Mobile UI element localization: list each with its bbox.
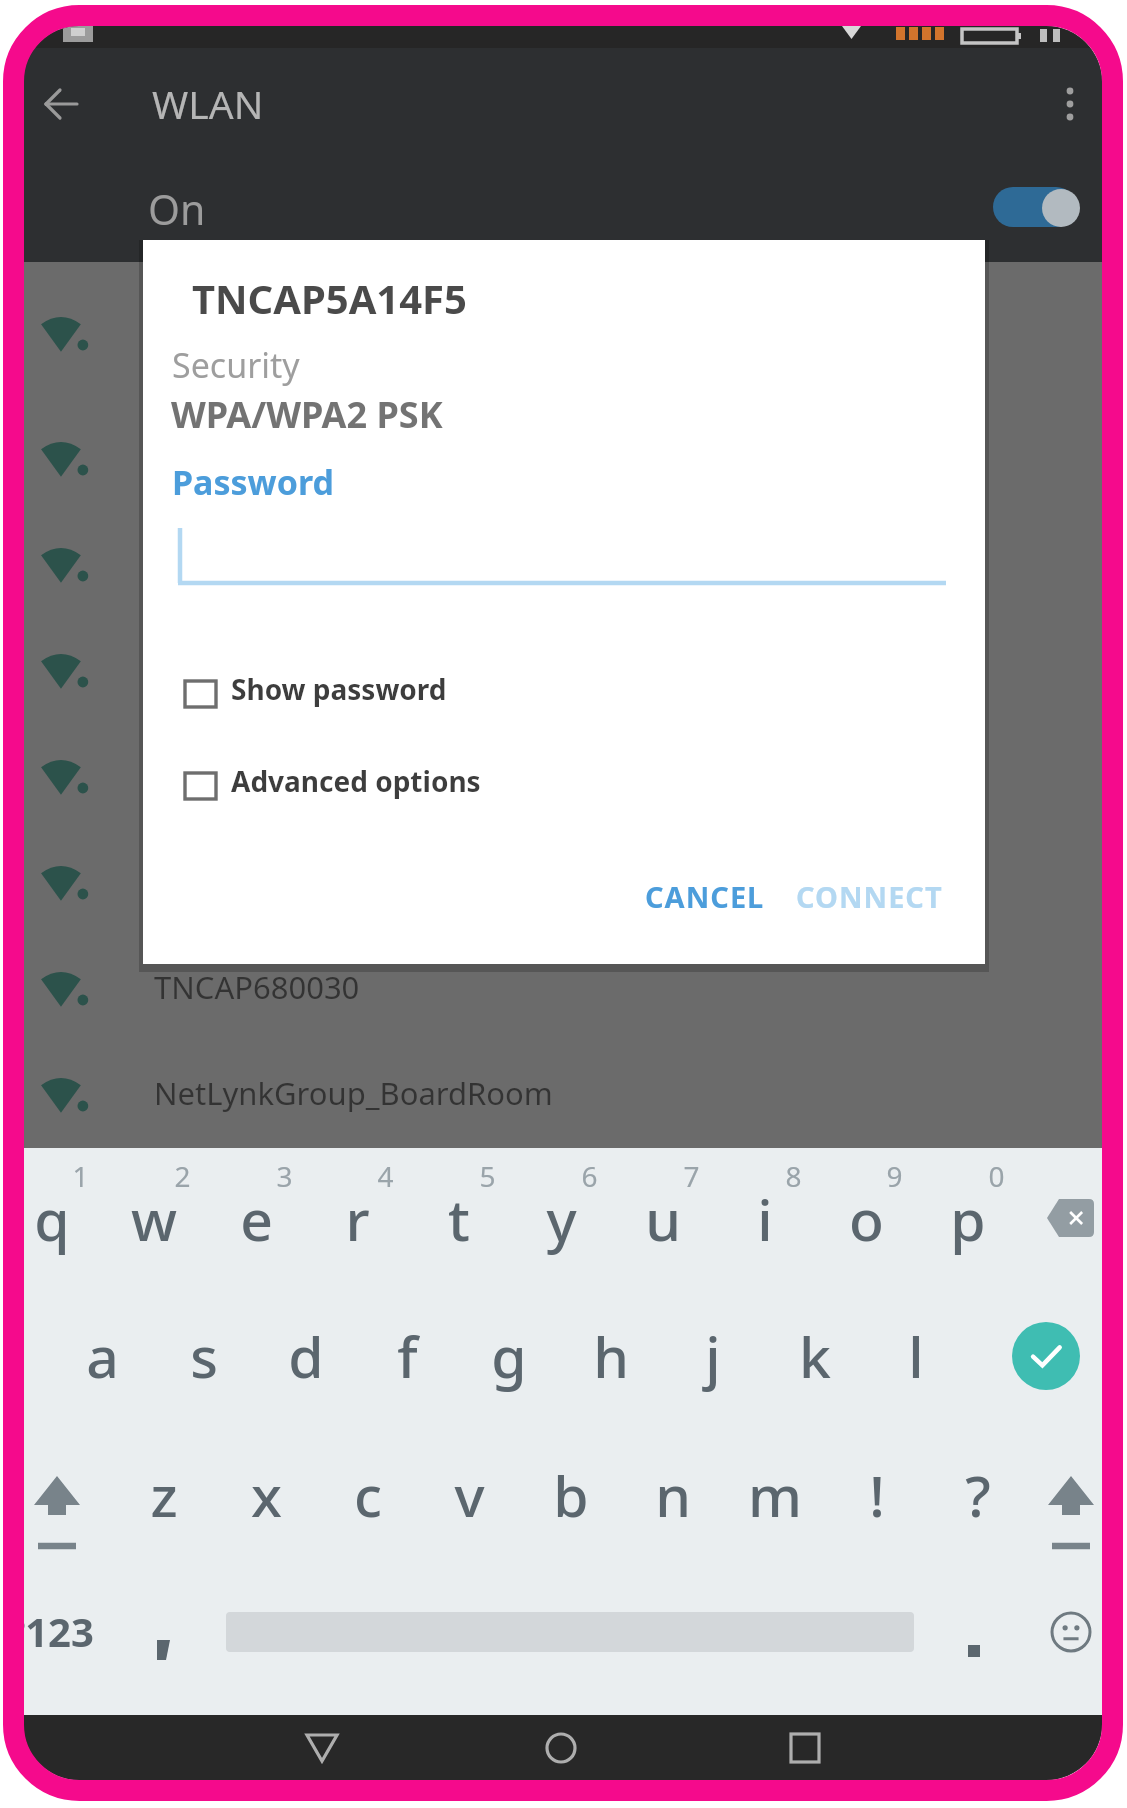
- staticText: Advanced options: [231, 762, 481, 800]
- staticText: On: [148, 181, 206, 237]
- button[interactable]: b: [520, 1453, 622, 1537]
- button[interactable]: h: [560, 1314, 662, 1398]
- button[interactable]: m: [724, 1453, 826, 1537]
- staticText: x: [251, 1456, 282, 1534]
- button[interactable]: Back: [274, 1715, 370, 1780]
- staticText: j: [705, 1317, 721, 1395]
- staticText: Password: [172, 459, 334, 505]
- staticText: f: [397, 1317, 418, 1395]
- button[interactable]: Enter: [1012, 1322, 1080, 1390]
- staticText: 8: [785, 1157, 802, 1195]
- staticText: 7: [683, 1157, 700, 1195]
- staticText: !: [869, 1456, 885, 1534]
- button[interactable]: k: [764, 1314, 866, 1398]
- button[interactable]: p: [917, 1177, 1019, 1261]
- staticText: v: [454, 1456, 485, 1534]
- button[interactable]: [23, 281, 1102, 387]
- staticText: l: [908, 1317, 924, 1395]
- staticText: NetLynkGroup_BoardRoom: [154, 1072, 553, 1114]
- button[interactable]: Advanced options: [183, 757, 481, 815]
- button[interactable]: Back: [23, 60, 105, 148]
- button[interactable]: Period: [934, 1611, 1014, 1691]
- button[interactable]: f: [356, 1314, 458, 1398]
- staticText: TNCAP5A14F5: [192, 271, 467, 325]
- staticText: n: [655, 1456, 691, 1534]
- staticText: TNCAP680030: [154, 966, 360, 1008]
- button[interactable]: [23, 724, 1102, 830]
- button[interactable]: Recents: [757, 1715, 853, 1780]
- staticText: i: [757, 1180, 773, 1258]
- button[interactable]: Show password: [183, 665, 447, 723]
- staticText: m: [748, 1456, 802, 1534]
- staticText: WPA/WPA2 PSK: [171, 390, 443, 439]
- staticText: ?: [965, 1456, 991, 1534]
- button[interactable]: g: [458, 1314, 560, 1398]
- staticText: 0: [988, 1157, 1005, 1195]
- staticText: g: [491, 1317, 527, 1395]
- button[interactable]: [23, 618, 1102, 724]
- button[interactable]: NetLynkGroup_BoardRoom: [23, 1042, 1102, 1148]
- button[interactable]: [23, 512, 1102, 618]
- button[interactable]: r: [306, 1177, 408, 1261]
- staticText: 5: [479, 1157, 496, 1195]
- button[interactable]: Shift: [23, 1443, 107, 1553]
- staticText: 4: [377, 1157, 394, 1195]
- button[interactable]: Home: [513, 1715, 609, 1780]
- staticText: WLAN: [152, 77, 264, 130]
- button[interactable]: [23, 830, 1102, 936]
- staticText: y: [546, 1180, 577, 1258]
- button[interactable]: l: [865, 1314, 967, 1398]
- staticText: p: [950, 1180, 986, 1258]
- button[interactable]: i: [714, 1177, 816, 1261]
- staticText: o: [849, 1180, 884, 1258]
- button[interactable]: d: [255, 1314, 357, 1398]
- button[interactable]: !: [826, 1453, 928, 1537]
- button[interactable]: CONNECT: [778, 866, 960, 926]
- button[interactable]: q: [23, 1177, 103, 1261]
- staticText: w: [131, 1180, 177, 1258]
- staticText: r: [345, 1180, 370, 1258]
- staticText: a: [86, 1317, 119, 1395]
- staticText: 6: [581, 1157, 598, 1195]
- staticText: Security: [172, 342, 300, 388]
- button[interactable]: CANCEL: [625, 866, 785, 926]
- staticText: u: [645, 1180, 681, 1258]
- button[interactable]: j: [662, 1314, 764, 1398]
- button[interactable]: u: [612, 1177, 714, 1261]
- button[interactable]: v: [418, 1453, 520, 1537]
- button[interactable]: a: [51, 1314, 153, 1398]
- button[interactable]: ?: [927, 1453, 1029, 1537]
- button[interactable]: Emoji: [1027, 1588, 1102, 1676]
- button[interactable]: WLAN on off: [980, 177, 1090, 237]
- button[interactable]: Backspace: [1020, 1178, 1102, 1258]
- staticText: t: [448, 1180, 470, 1258]
- button[interactable]: o: [815, 1177, 917, 1261]
- staticText: h: [593, 1317, 629, 1395]
- button[interactable]: [23, 406, 1102, 512]
- button[interactable]: Shift: [1021, 1443, 1102, 1553]
- staticText: Show password: [231, 670, 447, 708]
- button[interactable]: Comma: [123, 1608, 203, 1688]
- staticText: q: [34, 1180, 70, 1258]
- button[interactable]: TNCAP680030: [23, 936, 1102, 1042]
- button[interactable]: s: [153, 1314, 255, 1398]
- staticText: b: [553, 1456, 589, 1534]
- staticText: CANCEL: [645, 877, 765, 916]
- staticText: 9: [886, 1157, 903, 1195]
- button[interactable]: c: [317, 1453, 419, 1537]
- staticText: z: [150, 1456, 178, 1534]
- button[interactable]: z: [113, 1453, 215, 1537]
- button[interactable]: More options: [1026, 60, 1102, 148]
- button[interactable]: n: [622, 1453, 724, 1537]
- staticText: d: [288, 1317, 324, 1395]
- button[interactable]: ?123: [23, 1589, 101, 1673]
- staticText: 2: [174, 1157, 191, 1195]
- button[interactable]: y: [510, 1177, 612, 1261]
- staticText: e: [240, 1180, 273, 1258]
- staticText: k: [799, 1317, 831, 1395]
- button[interactable]: w: [103, 1177, 205, 1261]
- button[interactable]: e: [205, 1177, 307, 1261]
- button[interactable]: x: [215, 1453, 317, 1537]
- button[interactable]: t: [408, 1177, 510, 1261]
